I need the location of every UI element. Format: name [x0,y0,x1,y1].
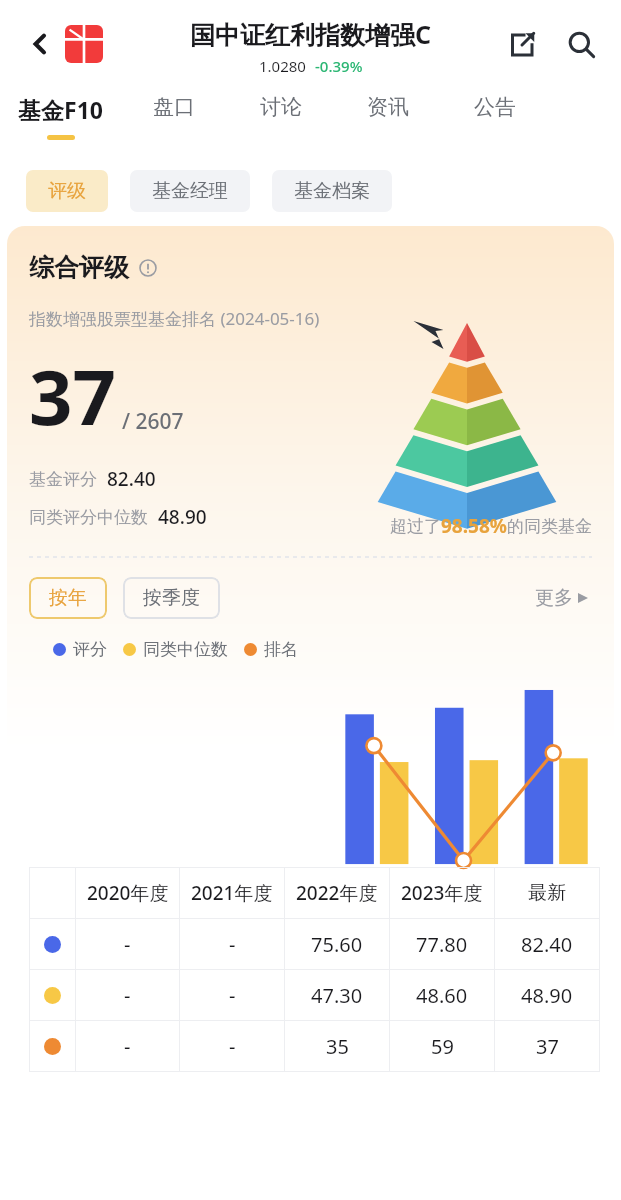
staticText: 37 [536,1033,559,1060]
staticText: -0.39% [315,56,363,76]
staticText: 2022年度 [296,880,378,906]
button[interactable]: 按季度 [123,577,220,619]
staticText: - [124,982,131,1009]
button[interactable]: 更多 [531,582,592,614]
staticText: 综合评级 [29,252,129,283]
button[interactable]: 按年 [29,577,107,619]
staticText: 的同类基金 [507,516,592,537]
button[interactable]: 资讯 [367,94,474,158]
staticText: / 2607 [122,407,184,436]
staticText: 82.40 [521,931,573,958]
staticText: 超过了 [390,516,441,537]
staticText: 按季度 [143,586,200,610]
staticText: 98.58% [441,513,507,539]
staticText: 指数增强股票型基金排名 (2024-05-16) [29,307,320,330]
staticText: 评分 [73,639,107,660]
staticText: 基金评分 [29,469,97,490]
staticText: 77.80 [416,931,468,958]
button[interactable]: Search [555,18,607,70]
staticText: 2023年度 [401,880,483,906]
button[interactable]: 讨论 [260,94,367,158]
button[interactable]: 基金档案 [272,170,392,212]
staticText: 讨论 [260,94,302,120]
button[interactable]: 基金F10 [18,94,153,158]
staticText: 75.60 [311,931,363,958]
staticText: 最新 [528,881,566,905]
staticText: 48.60 [416,982,468,1009]
staticText: 基金档案 [294,179,370,203]
staticText: 82.40 [107,466,156,492]
staticText: 同类评分中位数 [29,507,148,528]
staticText: 2021年度 [191,880,273,906]
staticText: 2020年度 [87,880,169,906]
staticText: 按年 [49,586,87,610]
staticText: 48.90 [158,504,207,530]
button[interactable]: 盘口 [153,94,260,158]
staticText: 47.30 [311,982,363,1009]
staticText: - [229,931,236,958]
button[interactable]: 基金经理 [130,170,250,212]
staticText: 基金F10 [18,94,103,125]
button[interactable]: Back [14,18,66,70]
staticText: 35 [326,1033,349,1060]
staticText: 国中证红利指数增强C [190,17,432,51]
staticText: 基金经理 [152,179,228,203]
staticText: 59 [431,1033,454,1060]
button[interactable]: 评级 [26,170,108,212]
staticText: 公告 [474,94,516,120]
staticText: - [229,982,236,1009]
staticText: 更多 [535,586,573,610]
staticText: - [229,1033,236,1060]
staticText: 资讯 [367,94,409,120]
button[interactable]: 公告 [474,94,581,158]
staticText: 37 [29,344,116,448]
staticText: 盘口 [153,94,195,120]
staticText: 1.0280 [259,56,306,76]
staticText: 48.90 [521,982,573,1009]
staticText: - [124,1033,131,1060]
staticText: 评级 [48,179,86,203]
staticText: 排名 [264,639,298,660]
button[interactable]: Share [497,19,547,69]
staticText: 同类中位数 [143,639,228,660]
staticText: - [124,931,131,958]
